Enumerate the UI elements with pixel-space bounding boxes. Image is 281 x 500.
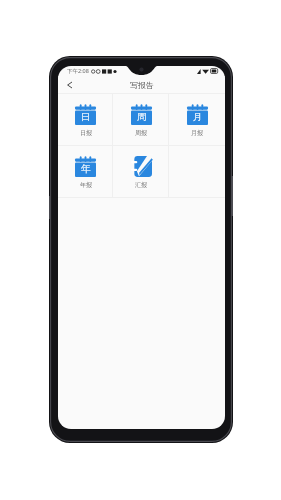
staticText: 月 bbox=[193, 111, 203, 123]
button[interactable]: 月 bbox=[169, 94, 225, 145]
staticText: 汇报 bbox=[135, 181, 147, 189]
staticText: 周 bbox=[137, 111, 147, 123]
staticText: 写报告 bbox=[130, 80, 154, 90]
staticText: 下午2:08 bbox=[67, 67, 89, 75]
staticText: 年 bbox=[81, 163, 91, 175]
button[interactable]: Back bbox=[61, 76, 78, 93]
button[interactable]: 年 bbox=[58, 146, 113, 197]
staticText: 月报 bbox=[191, 129, 203, 137]
button[interactable]: 周 bbox=[113, 94, 169, 145]
staticText: 日报 bbox=[80, 129, 92, 137]
staticText: 日 bbox=[81, 111, 91, 123]
staticText: 年报 bbox=[80, 181, 92, 189]
button[interactable]: 汇报 bbox=[113, 146, 169, 197]
button[interactable]: 日 bbox=[58, 94, 113, 145]
staticText: 周报 bbox=[135, 129, 147, 137]
